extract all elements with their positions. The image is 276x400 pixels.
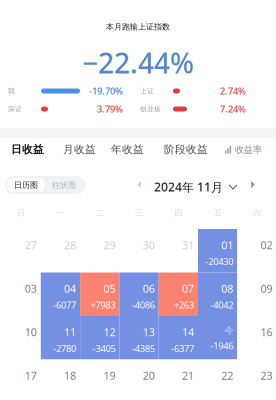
button[interactable]: 19 [80,359,119,400]
button[interactable]: 07 [159,272,198,316]
staticText: 21 [182,368,194,383]
staticText: 柱状图 [52,180,76,190]
staticText: -4086 [132,299,155,311]
button[interactable]: 23 [237,359,276,400]
staticText: 23 [261,368,273,383]
staticText: 19 [103,368,115,383]
staticText: 7.24% [220,103,246,115]
button[interactable]: 22 [198,359,237,400]
button[interactable]: 06 [119,272,159,316]
button[interactable]: 11 [41,316,80,359]
button[interactable]: 28 [41,229,80,272]
staticText: 三 [135,208,143,218]
button[interactable]: 10 [1,316,41,359]
staticText: -4042 [210,299,233,311]
button[interactable]: 14 [159,316,198,359]
staticText: 29 [103,238,115,252]
staticText: 日历图 [14,180,38,190]
staticText: 10 [25,325,37,339]
staticText: 02 [261,238,273,252]
button[interactable]: 12 [80,316,119,359]
button[interactable]: Next month [247,177,259,192]
staticText: 16 [261,325,273,339]
staticText: 深证 [8,105,22,113]
staticText: 22 [221,368,233,383]
button[interactable]: 月收益 [63,143,96,156]
button[interactable]: 29 [80,229,119,272]
staticText: -20430 [205,255,233,268]
staticText: -4385 [132,342,155,355]
staticText: 07 [182,281,194,296]
staticText: 创业板 [140,105,161,113]
button[interactable]: 16 [237,316,276,359]
staticText: 17 [25,368,37,383]
button[interactable]: 09 [237,272,276,316]
staticText: -6077 [53,299,76,311]
staticText: 阶段收益 [164,143,208,156]
staticText: 31 [182,238,194,252]
staticText: 四 [174,208,182,218]
staticText: 2.74% [220,85,246,97]
staticText: 27 [25,238,37,252]
button[interactable]: 18 [41,359,80,400]
staticText: 今 [224,325,233,336]
button[interactable]: 31 [159,229,198,272]
button[interactable]: 日历图 [7,178,45,192]
button[interactable]: 02 [237,229,276,272]
staticText: -19.70% [89,85,123,97]
staticText: −22.44% [82,44,194,81]
button[interactable]: 03 [1,272,41,316]
staticText: 06 [143,281,155,296]
staticText: 本月跑输上证指数 [106,22,170,32]
button[interactable]: 04 [41,272,80,316]
staticText: 09 [261,281,273,296]
staticText: 年收益 [111,143,144,156]
button[interactable]: 01 [198,229,237,272]
staticText: -2780 [53,342,76,355]
button[interactable]: 年收益 [111,143,144,156]
staticText: 3.79% [97,103,123,115]
staticText: 日 [17,208,25,218]
button[interactable]: 27 [1,229,41,272]
button[interactable]: 柱状图 [45,178,83,192]
button[interactable]: 30 [119,229,159,272]
staticText: -1946 [210,339,233,352]
button[interactable]: Previous month [133,177,145,192]
button[interactable]: 08 [198,272,237,316]
staticText: 日收益 [11,143,44,156]
staticText: 月收益 [63,143,96,156]
button[interactable]: 05 [80,272,119,316]
staticText: 六 [253,208,261,218]
button[interactable]: 阶段收益 [164,143,208,156]
staticText: 03 [25,281,37,296]
staticText: 05 [103,281,115,296]
button[interactable]: 日收益 [11,143,44,156]
staticText: 12 [103,325,115,339]
staticText: -3405 [92,342,115,355]
staticText: 30 [143,238,155,252]
staticText: 2024年 11月 [154,179,223,195]
staticText: 20 [143,368,155,383]
button[interactable]: 21 [159,359,198,400]
button[interactable]: 2024年 11月 [154,179,237,195]
staticText: 收益率 [235,144,262,155]
staticText: 04 [64,281,76,296]
button[interactable]: 17 [1,359,41,400]
staticText: +7983 [90,299,115,311]
staticText: 二 [96,208,104,218]
staticText: 18 [64,368,76,383]
button[interactable]: 20 [119,359,159,400]
staticText: 14 [182,325,194,339]
staticText: 28 [64,238,76,252]
staticText: 五 [214,208,222,218]
staticText: 08 [221,281,233,296]
staticText: 13 [143,325,155,339]
staticText: 上证 [140,87,154,95]
button[interactable]: 13 [119,316,159,359]
staticText: +263 [174,299,194,311]
staticText: 我 [8,87,15,95]
staticText: -6377 [171,342,194,355]
staticText: 01 [221,238,233,252]
button[interactable]: 收益率 [225,144,262,155]
button[interactable]: 今 [198,316,237,359]
